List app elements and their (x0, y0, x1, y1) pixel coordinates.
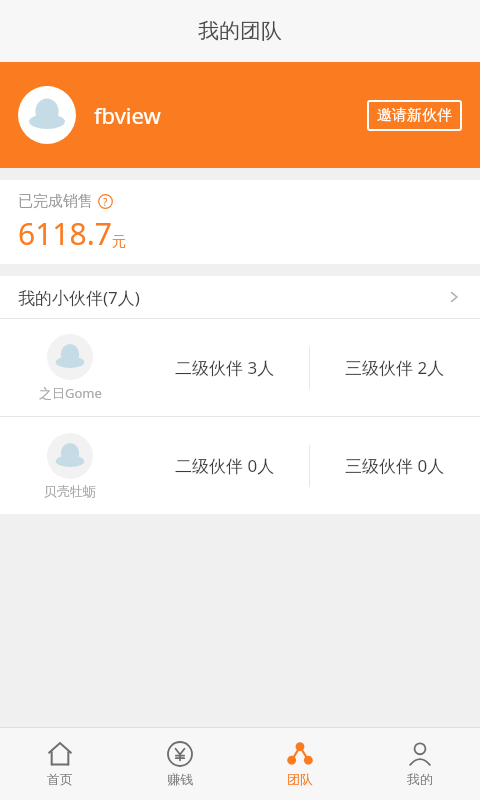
staticText: ? (103, 195, 108, 209)
staticText: 二级伙伴 3人 (175, 356, 275, 379)
button[interactable]: 贝壳牡蛎 (0, 417, 480, 514)
staticText: 已完成销售 (18, 192, 93, 211)
staticText: 三级伙伴 0人 (345, 454, 445, 477)
button[interactable]: 首页 (0, 728, 120, 800)
staticText: 我的 (407, 771, 433, 787)
button[interactable]: 邀请新伙伴 (367, 100, 462, 131)
staticText: 我的小伙伴(7人) (18, 286, 140, 309)
button[interactable]: 我的 (360, 728, 480, 800)
button[interactable]: 我的小伙伴(7人) (0, 276, 480, 318)
staticText: 我的团队 (198, 18, 282, 44)
button[interactable]: 之日Gome (0, 319, 480, 416)
staticText: 三级伙伴 2人 (345, 356, 445, 379)
staticText: 二级伙伴 0人 (175, 454, 275, 477)
staticText: 之日Gome (39, 384, 102, 402)
button[interactable]: 团队 (240, 728, 360, 800)
staticText: fbview (94, 100, 161, 130)
staticText: 首页 (47, 771, 73, 787)
staticText: 6118.7 (18, 213, 112, 254)
button[interactable]: 赚钱 (120, 728, 240, 800)
staticText: 贝壳牡蛎 (44, 483, 96, 499)
staticText: 赚钱 (167, 771, 193, 787)
staticText: 邀请新伙伴 (377, 106, 452, 125)
staticText: 元 (112, 233, 126, 251)
button[interactable]: 帮助 (98, 194, 113, 209)
staticText: 团队 (287, 771, 313, 787)
